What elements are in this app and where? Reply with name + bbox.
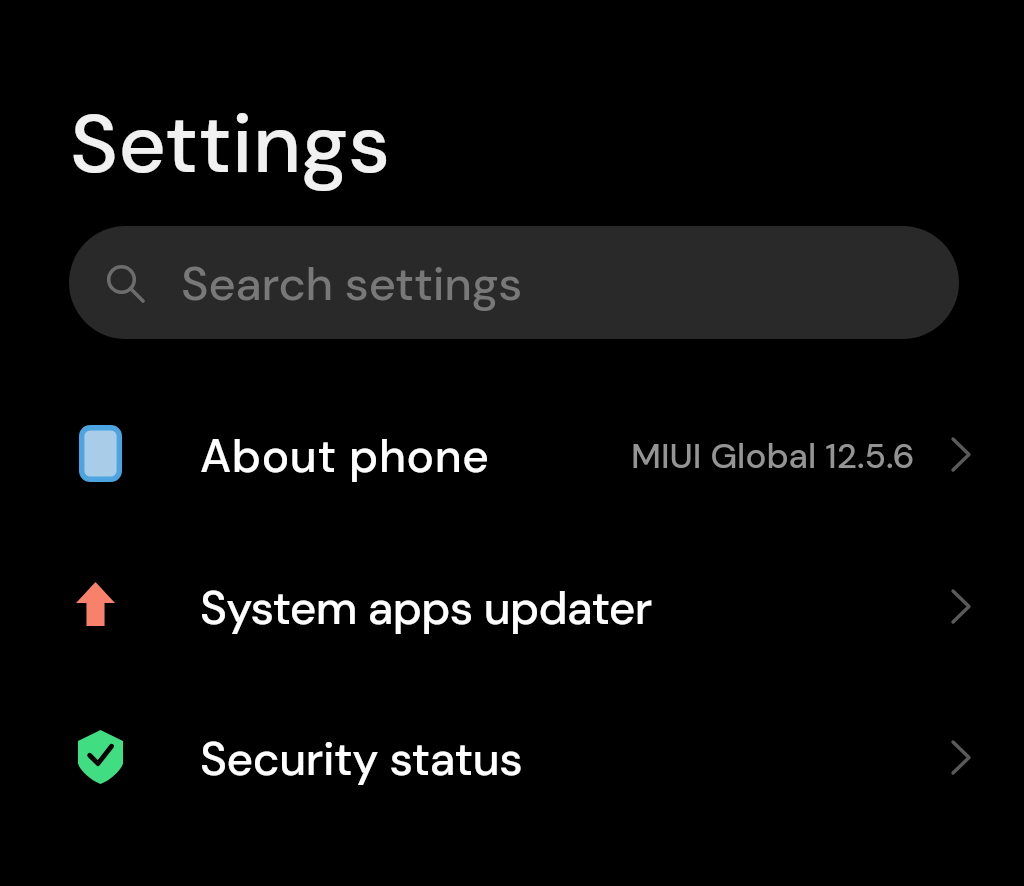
staticText: Settings (70, 91, 391, 198)
staticText: About phone (200, 426, 490, 486)
other: Search (103, 266, 145, 308)
staticText: Search settings (181, 253, 523, 314)
staticText: System apps updater (200, 578, 652, 638)
button[interactable]: Security status (0, 687, 1024, 827)
button[interactable]: About phone (0, 384, 1024, 524)
button[interactable]: Search (69, 226, 959, 339)
staticText: MIUI Global 12.5.6 (631, 433, 915, 479)
button[interactable]: System apps updater (0, 536, 1024, 676)
staticText: Security status (200, 729, 523, 789)
